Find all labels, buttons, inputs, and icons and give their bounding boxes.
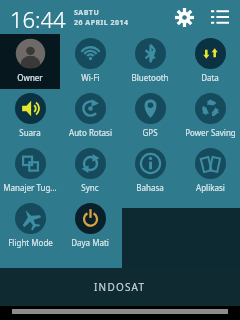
staticText: Flight Mode bbox=[8, 237, 53, 248]
staticText: Daya Mati bbox=[71, 237, 109, 248]
staticText: 26 APRIL 2014 bbox=[74, 18, 129, 28]
button[interactable]: Manajer Tug... bbox=[0, 144, 60, 199]
staticText: Bluetooth bbox=[131, 72, 169, 83]
button[interactable]: Daya Mati bbox=[60, 199, 120, 254]
staticText: Power Saving bbox=[185, 127, 236, 138]
button[interactable]: Auto Rotasi bbox=[60, 89, 120, 144]
button[interactable]: Settings bbox=[170, 3, 198, 31]
button[interactable]: Suara bbox=[0, 89, 60, 144]
staticText: Owner bbox=[17, 72, 43, 83]
button[interactable]: Sync bbox=[60, 144, 120, 199]
staticText: SABTU bbox=[74, 8, 100, 18]
button[interactable]: GPS bbox=[120, 89, 180, 144]
staticText: Aplikasi bbox=[196, 182, 225, 193]
staticText: 16:44 bbox=[10, 4, 66, 34]
staticText: Suara bbox=[19, 127, 41, 138]
staticText: Sync bbox=[81, 182, 99, 193]
staticText: Auto Rotasi bbox=[69, 127, 112, 138]
button[interactable]: Wi-Fi bbox=[60, 34, 120, 89]
button[interactable]: Edit quick settings bbox=[206, 3, 234, 31]
button[interactable]: Power Saving bbox=[180, 89, 240, 144]
staticText: Wi-Fi bbox=[81, 72, 100, 83]
button[interactable]: Aplikasi bbox=[180, 144, 240, 199]
staticText: Data bbox=[201, 72, 219, 83]
staticText: GPS bbox=[142, 127, 158, 138]
staticText: Manajer Tug... bbox=[3, 182, 57, 193]
button[interactable]: Bahasa bbox=[120, 144, 180, 199]
button[interactable]: Owner bbox=[0, 34, 60, 89]
button[interactable]: Bluetooth bbox=[120, 34, 180, 89]
staticText: INDOSAT bbox=[94, 280, 146, 294]
button[interactable]: Flight Mode bbox=[0, 199, 60, 254]
staticText: Bahasa bbox=[136, 182, 164, 193]
button[interactable]: Data bbox=[180, 34, 240, 89]
